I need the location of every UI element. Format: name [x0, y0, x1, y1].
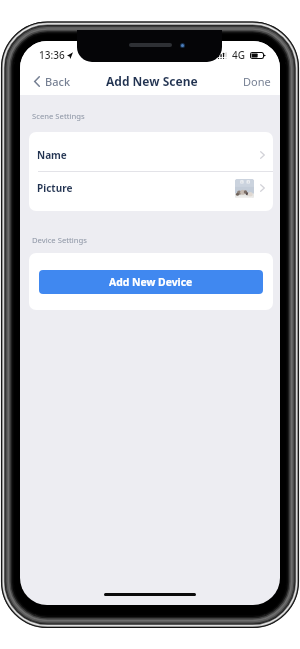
staticText: 4G: [232, 48, 245, 62]
staticText: Done: [243, 74, 271, 89]
button[interactable]: Name: [29, 139, 273, 171]
button[interactable]: Back: [20, 69, 80, 94]
staticText: Back: [45, 74, 71, 89]
staticText: 13:36: [39, 48, 65, 62]
staticText: Add New Scene: [106, 73, 198, 89]
staticText: Scene Settings: [32, 111, 85, 121]
staticText: Device Settings: [32, 235, 87, 245]
staticText: Name: [37, 148, 67, 162]
button[interactable]: Done: [233, 68, 280, 95]
staticText: Add New Device: [109, 275, 193, 289]
staticText: Picture: [37, 181, 73, 195]
button[interactable]: Picture: [29, 172, 273, 204]
button[interactable]: Add New Device: [39, 270, 263, 294]
